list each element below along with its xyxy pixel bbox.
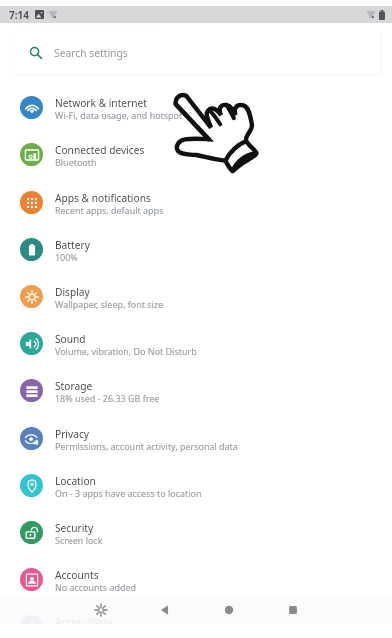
staticText: On - 3 apps have access to location bbox=[55, 487, 202, 499]
button[interactable]: Display bbox=[0, 273, 392, 320]
staticText: Sound bbox=[55, 332, 86, 346]
staticText: Wallpaper, sleep, font size bbox=[55, 298, 164, 310]
staticText: Storage bbox=[55, 379, 93, 393]
button[interactable]: Home bbox=[216, 597, 242, 623]
staticText: 18% used - 26.33 GB free bbox=[55, 392, 160, 404]
button[interactable]: Accessibility bbox=[88, 597, 114, 623]
staticText: Battery bbox=[55, 238, 90, 252]
button[interactable]: Accessibility bbox=[0, 603, 392, 638]
staticText: Connected devices bbox=[55, 143, 145, 157]
button[interactable]: Sound bbox=[0, 320, 392, 367]
button[interactable]: Location bbox=[0, 462, 392, 509]
staticText: Volume, vibration, Do Not Disturb bbox=[55, 345, 197, 357]
staticText: Permissions, account activity, personal … bbox=[55, 440, 238, 452]
staticText: Privacy bbox=[55, 427, 89, 441]
button[interactable]: Privacy bbox=[0, 415, 392, 462]
button[interactable]: Accounts bbox=[0, 556, 392, 603]
button[interactable]: Connected devices bbox=[0, 131, 392, 178]
staticText: No accounts added bbox=[55, 581, 136, 593]
staticText: Display bbox=[55, 285, 90, 299]
button[interactable]: Battery bbox=[0, 226, 392, 273]
staticText: Accounts bbox=[55, 568, 99, 582]
staticText: Apps & notifications bbox=[55, 191, 151, 205]
staticText: Recent apps, default apps bbox=[55, 204, 164, 216]
staticText: Security bbox=[55, 521, 94, 535]
staticText: Location bbox=[55, 474, 96, 488]
button[interactable]: Apps & notifications bbox=[0, 179, 392, 226]
staticText: 100% bbox=[55, 251, 78, 263]
button[interactable]: Storage bbox=[0, 367, 392, 414]
staticText: Network & internet bbox=[55, 96, 148, 110]
button[interactable]: Back bbox=[152, 597, 178, 623]
staticText: Search settings bbox=[54, 46, 128, 60]
button[interactable]: Security bbox=[0, 509, 392, 556]
button[interactable]: Search settings bbox=[13, 32, 380, 74]
staticText: Screen lock bbox=[55, 534, 103, 546]
staticText: 7:14 bbox=[9, 8, 29, 22]
button[interactable]: Recents bbox=[280, 597, 306, 623]
staticText: Bluetooth bbox=[55, 156, 97, 168]
button[interactable]: Network & internet bbox=[0, 84, 392, 131]
staticText: Accessibility bbox=[55, 615, 113, 629]
staticText: Wi-Fi, data usage, and hotspot bbox=[55, 109, 183, 121]
